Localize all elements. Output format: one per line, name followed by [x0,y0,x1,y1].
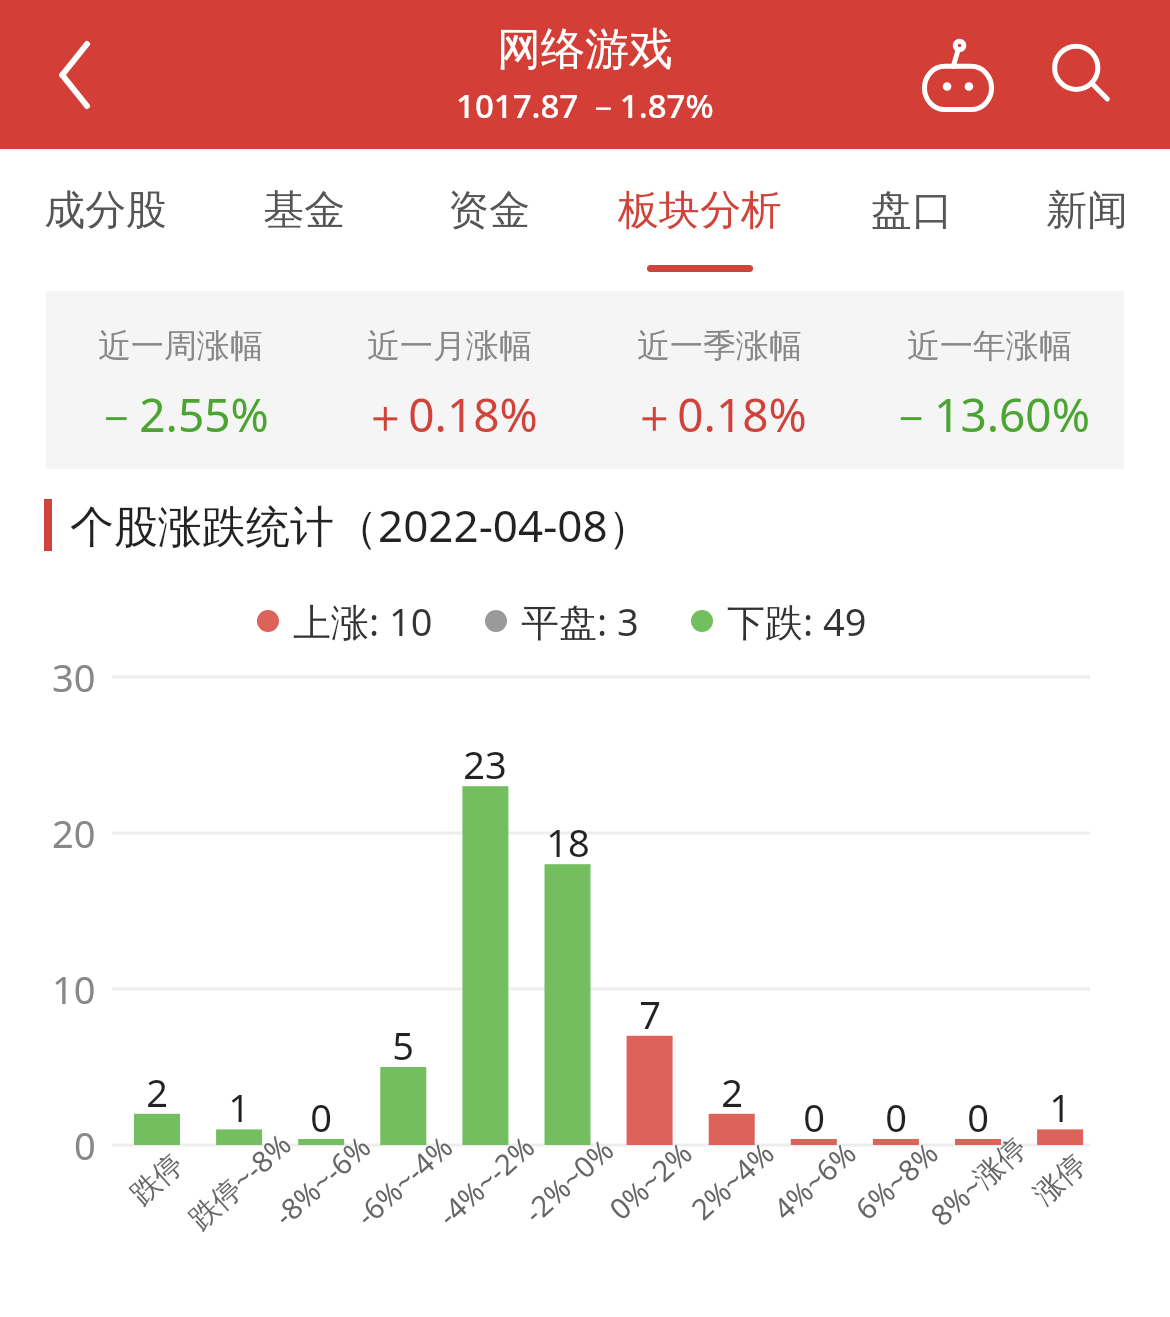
staticText: 0 [885,1091,907,1143]
staticText: 盘口 [871,185,953,237]
staticText: 7 [639,988,661,1040]
staticText: 近一季涨幅 [637,325,802,367]
staticText: 1017.87 －1.87% [456,83,714,128]
staticText: 基金 [263,185,345,237]
staticText: 6%~8% [846,1133,945,1228]
staticText: 0%~2% [600,1133,699,1228]
staticText: 成分股 [44,185,167,237]
staticText: -6%~-4% [347,1127,460,1234]
staticText: 下跌: 49 [727,595,867,647]
button[interactable]: Assistant robot [906,23,1010,127]
staticText: 2%~4% [682,1133,781,1228]
staticText: -4%~-2% [429,1127,542,1234]
staticText: －13.60% [888,383,1090,446]
button[interactable]: 基金 [211,149,396,291]
staticText: 资金 [448,185,530,237]
staticText: 近一年涨幅 [907,325,1072,367]
staticText: 20 [52,807,96,859]
staticText: 30 [52,651,96,703]
button[interactable]: 板块分析 [581,149,819,291]
staticText: 2 [721,1066,743,1118]
button[interactable]: 资金 [396,149,581,291]
staticText: 0 [967,1091,989,1143]
staticText: 2 [146,1066,168,1118]
staticText: 23 [463,738,507,790]
staticText: －2.55% [93,383,269,446]
staticText: 近一周涨幅 [98,325,263,367]
staticText: 跌停 [123,1146,191,1213]
staticText: 10 [52,963,96,1015]
staticText: 5 [392,1019,414,1071]
staticText: 1 [1049,1081,1071,1133]
staticText: ＋0.18% [362,383,538,446]
staticText: -8%~-6% [265,1127,378,1234]
staticText: 个股涨跌统计（2022-04-08） [70,495,652,555]
staticText: 跌停~-8% [180,1124,299,1238]
staticText: 0 [74,1119,96,1171]
staticText: 上涨: 10 [293,595,433,647]
staticText: 板块分析 [618,185,782,237]
button[interactable]: 新闻 [1004,149,1170,291]
staticText: 平盘: 3 [521,595,639,647]
staticText: 4%~6% [764,1133,863,1228]
staticText: 0 [310,1091,332,1143]
button[interactable]: 成分股 [0,149,211,291]
staticText: 涨停 [1026,1146,1094,1213]
staticText: 0 [803,1091,825,1143]
staticText: ＋0.18% [631,383,807,446]
staticText: -2%~0% [515,1130,621,1231]
staticText: 新闻 [1046,185,1128,237]
staticText: 近一月涨幅 [367,325,532,367]
button[interactable]: Search [1030,23,1134,127]
staticText: 8%~涨停 [921,1127,1034,1235]
staticText: 网络游戏 [497,22,673,77]
button[interactable]: Back [30,20,120,130]
staticText: 1 [228,1081,250,1133]
button[interactable]: 盘口 [819,149,1004,291]
staticText: 18 [546,816,590,868]
